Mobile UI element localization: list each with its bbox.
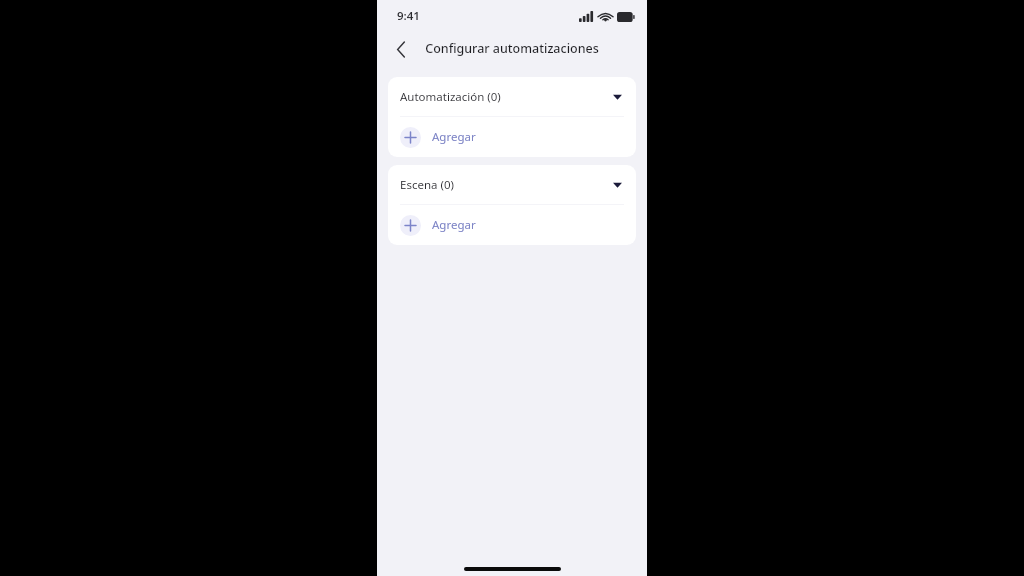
staticText: Automatización (0) (400, 89, 501, 105)
staticText: Agregar (432, 129, 476, 145)
button[interactable]: Escena (0) (388, 165, 636, 204)
button[interactable]: Automatización (0) (388, 77, 636, 116)
button[interactable]: Agregar (388, 117, 636, 157)
staticText: Configurar automatizaciones (377, 40, 647, 57)
button[interactable]: Back (388, 36, 414, 62)
button[interactable]: Agregar (388, 205, 636, 245)
staticText: 9:41 (397, 8, 420, 24)
staticText: Escena (0) (400, 177, 454, 193)
staticText: Agregar (432, 217, 476, 233)
